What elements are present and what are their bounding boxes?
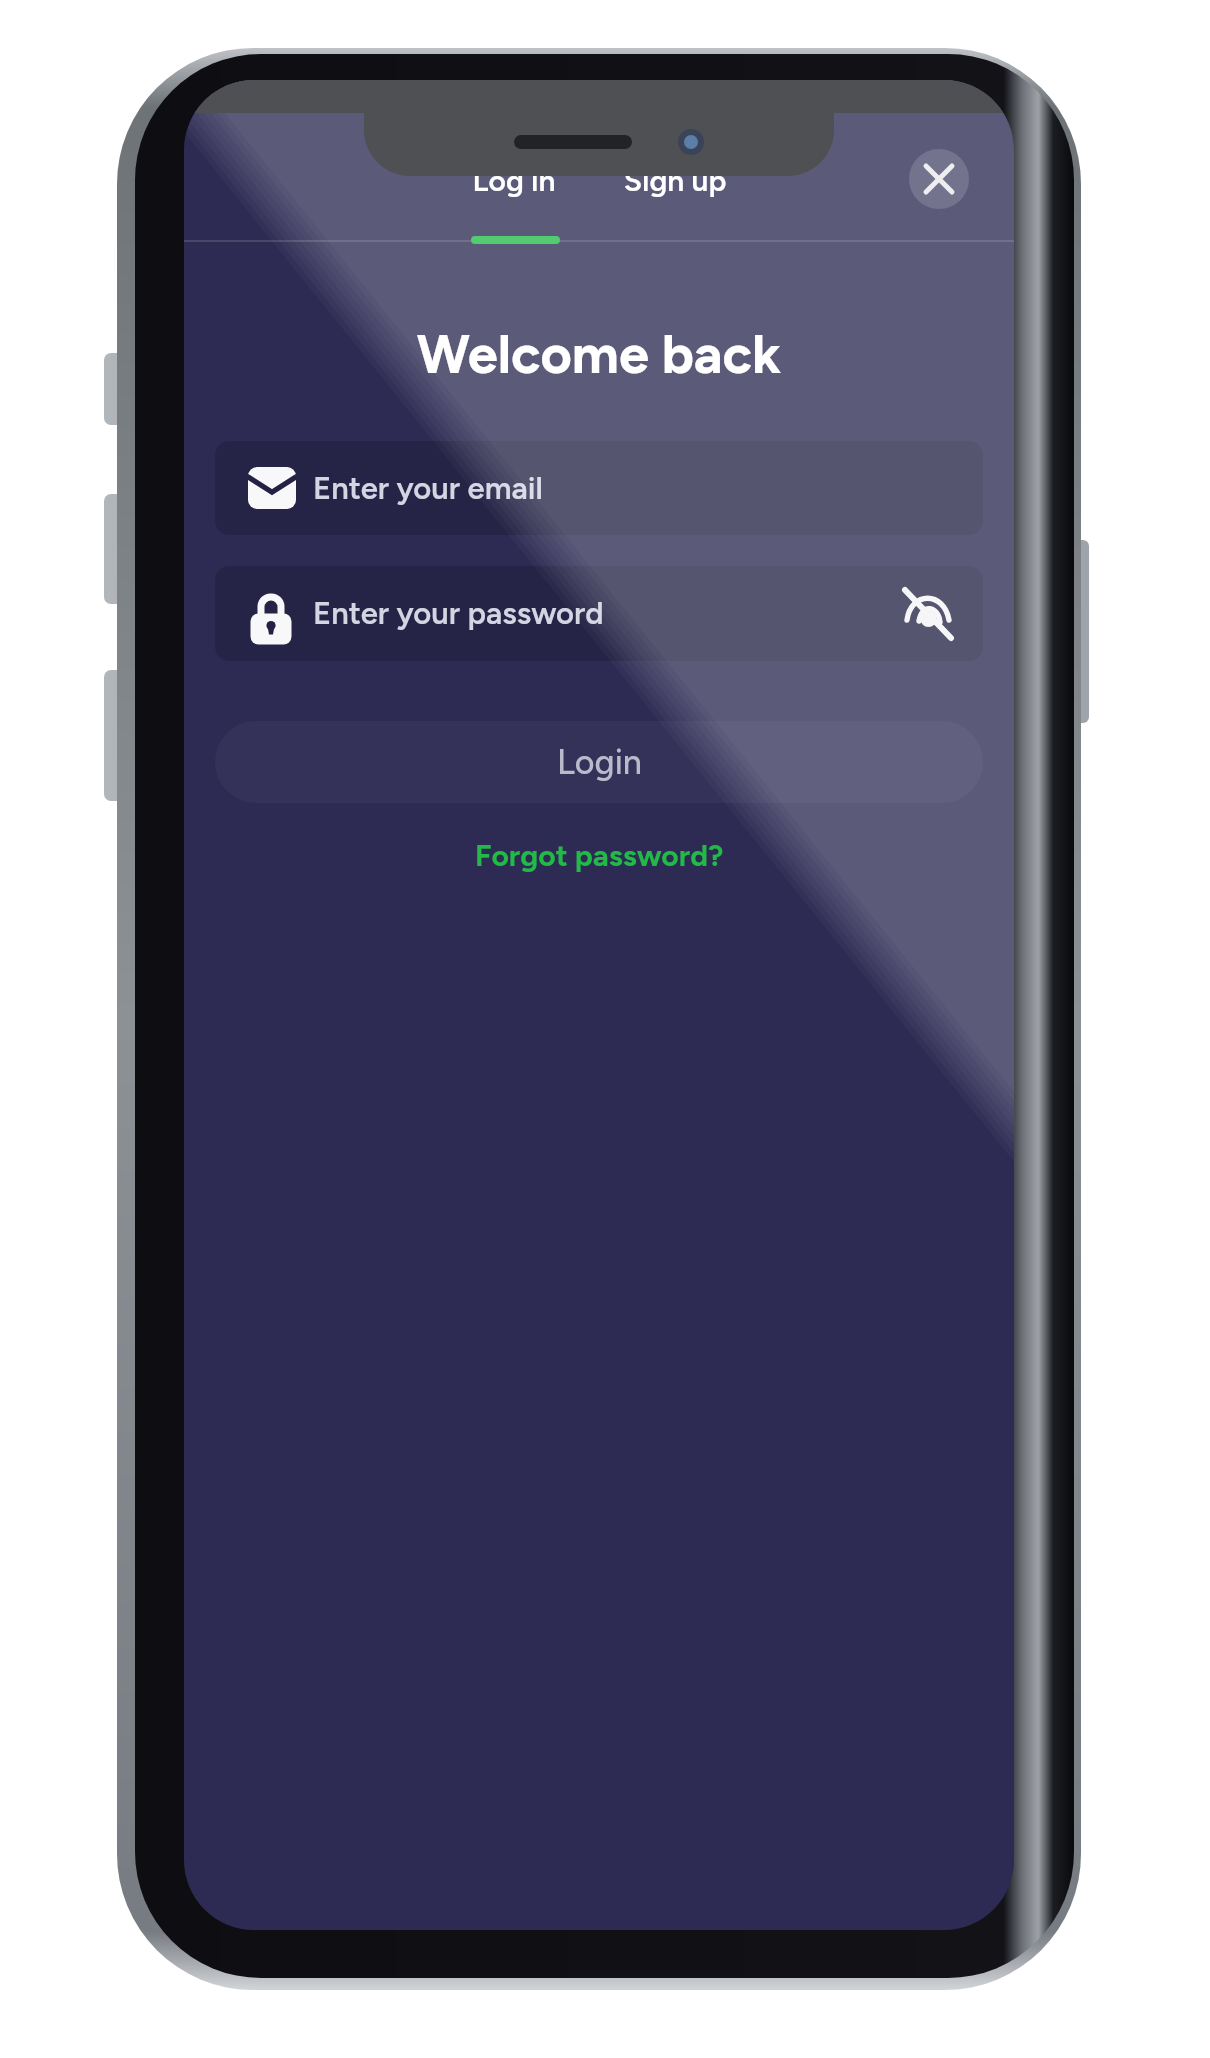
button[interactable]: Login [215,721,983,803]
staticText: Welcome back [184,322,1014,392]
button[interactable]: Close [909,149,969,209]
staticText: Enter your password [313,595,604,632]
button[interactable]: Enter your email [215,441,983,535]
button[interactable]: Log in [414,162,614,218]
button[interactable]: Sign up [575,162,775,218]
staticText: Enter your email [313,470,543,507]
staticText: Login [557,742,642,783]
button[interactable]: Forgot password? [439,832,759,878]
staticText: Forgot password? [475,837,724,873]
button[interactable]: Enter your password [215,566,983,661]
button[interactable]: Show password [900,586,956,642]
